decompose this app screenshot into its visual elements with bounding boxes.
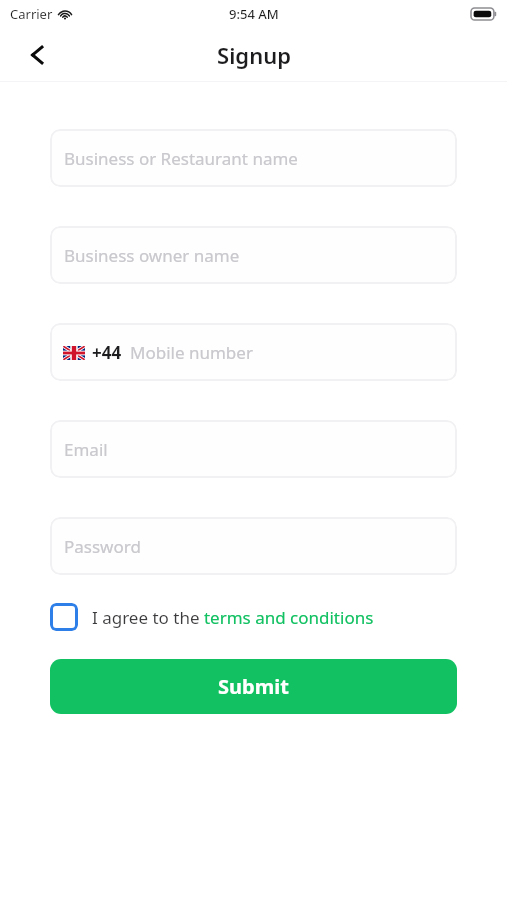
button[interactable]: Back <box>18 35 58 75</box>
staticText: +44 <box>92 341 122 364</box>
button[interactable]: Email <box>50 420 457 478</box>
button[interactable]: I agree to the terms and conditions <box>50 597 457 637</box>
button[interactable]: Password <box>50 517 457 575</box>
button[interactable]: Business or Restaurant name <box>50 129 457 187</box>
staticText: I agree to the terms and conditions <box>92 606 374 629</box>
button[interactable]: Submit <box>50 659 457 714</box>
staticText: Password <box>64 535 141 558</box>
staticText: Carrier <box>10 5 53 23</box>
button[interactable]: Business owner name <box>50 226 457 284</box>
staticText: Submit <box>218 673 289 700</box>
staticText: Business owner name <box>64 244 240 267</box>
button[interactable]: +44 <box>50 323 457 381</box>
staticText: Mobile number <box>130 341 253 364</box>
staticText: 9:54 AM <box>229 5 279 23</box>
staticText: Business or Restaurant name <box>64 147 298 170</box>
staticText: Email <box>64 438 108 461</box>
staticText: Signup <box>217 40 291 70</box>
